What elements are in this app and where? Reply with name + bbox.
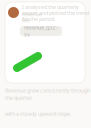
staticText: with a steady upward slope. [5, 110, 71, 117]
staticText: Revenue grew consistently through the qu… [5, 87, 90, 101]
staticText: export and plotted the trend line [22, 9, 89, 24]
staticText: for the period. [22, 15, 55, 23]
staticText: revenue_q3.csv [24, 24, 58, 38]
staticText: I analysed the quarterly revenue [22, 3, 79, 18]
